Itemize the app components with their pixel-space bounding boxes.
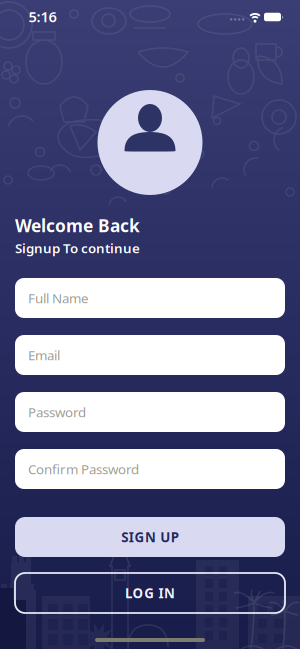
button[interactable]: SIGN UP (15, 517, 285, 557)
staticText: LOG IN (125, 584, 175, 602)
staticText: Full Name (28, 289, 89, 307)
staticText: Signup To continue (15, 239, 140, 257)
staticText: SIGN UP (121, 528, 179, 546)
secureTextField[interactable]: Confirm Password (28, 460, 277, 478)
button[interactable]: LOG IN (15, 573, 285, 613)
staticText: Password (28, 403, 86, 421)
staticText: Welcome Back (15, 214, 140, 237)
textField[interactable]: Full Name (28, 289, 277, 307)
secureTextField[interactable]: Password (28, 403, 277, 421)
staticText: 5:16 (28, 7, 56, 26)
staticText: Email (28, 346, 60, 364)
textField[interactable]: Email (28, 346, 277, 364)
staticText: Confirm Password (28, 460, 139, 478)
